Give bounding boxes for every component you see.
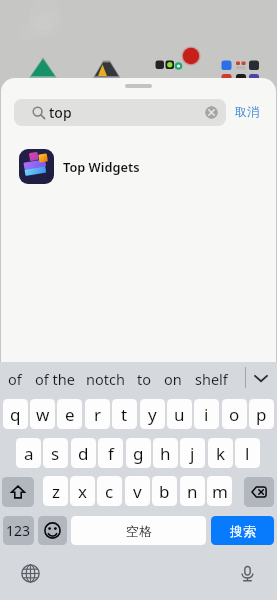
staticText: shelf: [195, 369, 228, 389]
staticText: h: [160, 442, 171, 465]
button[interactable]: 搜索: [211, 516, 274, 545]
staticText: c: [105, 480, 114, 503]
staticText: of the: [35, 369, 75, 389]
staticText: p: [256, 403, 267, 426]
staticText: notch: [86, 369, 125, 389]
button[interactable]: l: [235, 438, 260, 468]
staticText: m: [212, 480, 228, 503]
staticText: 搜索: [230, 523, 256, 539]
staticText: 取消: [235, 104, 259, 119]
button[interactable]: Voice input: [236, 562, 259, 585]
staticText: v: [133, 480, 142, 503]
staticText: of: [8, 369, 22, 389]
button[interactable]: 空格: [71, 516, 206, 545]
button[interactable]: of the: [31, 364, 79, 394]
button[interactable]: z: [43, 476, 68, 506]
button[interactable]: v: [125, 476, 150, 506]
staticText: x: [78, 480, 87, 503]
staticText: u: [174, 403, 185, 426]
button[interactable]: to: [120, 364, 168, 394]
staticText: a: [24, 442, 34, 465]
staticText: q: [10, 403, 21, 426]
staticText: z: [52, 480, 60, 503]
staticText: l: [245, 442, 250, 465]
staticText: f: [108, 442, 114, 465]
button[interactable]: w: [30, 399, 55, 429]
button[interactable]: o: [222, 399, 247, 429]
staticText: r: [94, 403, 102, 426]
button[interactable]: s: [43, 438, 68, 468]
staticText: b: [159, 480, 170, 503]
staticText: t: [121, 403, 128, 426]
staticText: n: [187, 480, 198, 503]
staticText: e: [65, 403, 75, 426]
button[interactable]: e: [57, 399, 82, 429]
staticText: y: [148, 403, 157, 426]
button[interactable]: t: [112, 399, 137, 429]
button[interactable]: j: [180, 438, 205, 468]
button[interactable]: x: [70, 476, 95, 506]
staticText: g: [133, 442, 144, 465]
button[interactable]: Backspace: [244, 477, 274, 507]
button[interactable]: d: [71, 438, 96, 468]
staticText: Top Widgets: [63, 158, 140, 175]
button[interactable]: i: [194, 399, 219, 429]
staticText: top: [49, 103, 72, 122]
button[interactable]: n: [180, 476, 205, 506]
staticText: on: [164, 369, 182, 389]
staticText: to: [137, 369, 152, 389]
button[interactable]: Clear text: [205, 106, 218, 119]
staticText: j: [190, 442, 195, 465]
button[interactable]: g: [126, 438, 151, 468]
staticText: 123: [6, 521, 31, 540]
button[interactable]: c: [97, 476, 122, 506]
button[interactable]: q: [3, 399, 28, 429]
button[interactable]: y: [140, 399, 165, 429]
button[interactable]: r: [85, 399, 110, 429]
staticText: o: [229, 403, 240, 426]
button[interactable]: Switch keyboard: [19, 562, 42, 585]
button[interactable]: f: [98, 438, 123, 468]
button[interactable]: k: [208, 438, 233, 468]
staticText: w: [36, 403, 50, 426]
staticText: d: [78, 442, 89, 465]
button[interactable]: h: [153, 438, 178, 468]
button[interactable]: on: [149, 364, 197, 394]
button[interactable]: m: [207, 476, 232, 506]
button[interactable]: Hide suggestions: [249, 365, 273, 391]
button[interactable]: Emoji keyboard: [38, 516, 67, 545]
button[interactable]: p: [249, 399, 274, 429]
staticText: 空格: [126, 523, 152, 539]
button[interactable]: u: [167, 399, 192, 429]
button[interactable]: 取消: [228, 98, 266, 125]
button[interactable]: shelf: [187, 364, 235, 394]
button[interactable]: notch: [81, 364, 129, 394]
staticText: s: [51, 442, 60, 465]
button[interactable]: top: [14, 99, 226, 126]
button[interactable]: 123: [3, 516, 34, 545]
button[interactable]: of: [0, 364, 39, 394]
staticText: i: [204, 403, 209, 426]
button[interactable]: Top Widgets: [1, 144, 276, 188]
button[interactable]: Shift: [2, 477, 34, 507]
staticText: k: [216, 442, 226, 465]
button[interactable]: a: [16, 438, 41, 468]
button[interactable]: b: [152, 476, 177, 506]
